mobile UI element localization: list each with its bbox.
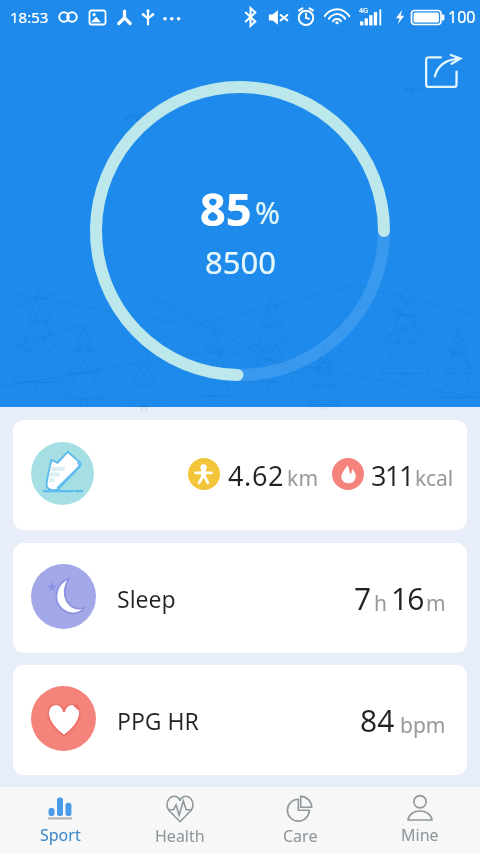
staticText: bpm [400, 711, 446, 740]
staticText: 311 [371, 457, 414, 494]
staticText: Health [155, 825, 205, 847]
button[interactable]: PPG HR [13, 665, 467, 775]
staticText: 100 [448, 6, 476, 28]
staticText: h [374, 589, 387, 618]
staticText: 16 [391, 578, 424, 619]
staticText: PPG HR [117, 705, 199, 736]
staticText: km [287, 464, 319, 493]
staticText: 8500 [205, 241, 276, 283]
staticText: 4G [359, 6, 369, 16]
button[interactable]: Sport [0, 787, 120, 853]
staticText: 7 [354, 578, 372, 619]
button[interactable]: Health [120, 787, 240, 853]
button[interactable]: Sleep [13, 543, 467, 653]
staticText: Sleep [117, 583, 176, 614]
staticText: m [426, 589, 446, 618]
button[interactable]: 4.62 [13, 420, 467, 530]
button[interactable]: Mine [360, 787, 480, 853]
staticText: kcal [415, 464, 454, 493]
staticText: Sport [40, 824, 81, 846]
staticText: 85 [200, 178, 252, 239]
staticText: % [255, 192, 280, 233]
staticText: 4.62 [228, 457, 284, 494]
staticText: 84 [360, 700, 395, 741]
staticText: Mine [401, 824, 439, 846]
button[interactable]: Share [421, 51, 467, 97]
staticText: 18:53 [10, 7, 49, 27]
staticText: Care [283, 825, 318, 847]
button[interactable]: Care [240, 787, 360, 853]
